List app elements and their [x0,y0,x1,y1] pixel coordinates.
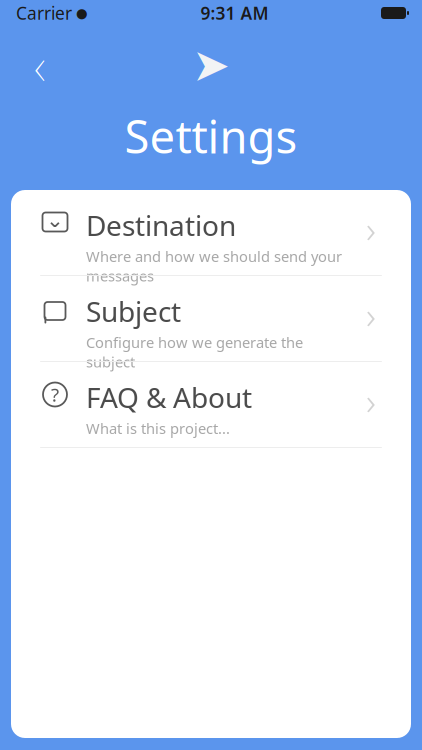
button[interactable]: FAQ and About [11,362,411,447]
staticText: Settings [124,106,297,166]
staticText: ➤ [192,39,230,91]
staticText: › [366,376,376,425]
button[interactable]: Subject [11,276,411,361]
staticText: ⌄ [46,208,64,232]
staticText: Configure how we generate the subject [86,333,303,372]
button[interactable]: Destination [11,190,411,275]
staticText: Destination [86,206,236,244]
staticText: Where and how we should send your messag… [86,247,342,286]
staticText: 9:31 AM [200,1,268,24]
staticText: What is this project... [86,419,230,438]
staticText: › [366,204,376,253]
staticText: › [366,290,376,339]
staticText: Subject [86,292,181,330]
staticText: ‹ [34,30,46,100]
staticText: Carrier [16,1,72,24]
button[interactable]: Back [18,42,62,88]
staticText: ● [76,5,88,20]
staticText: FAQ & About [86,378,252,416]
staticText: ? [51,382,59,407]
